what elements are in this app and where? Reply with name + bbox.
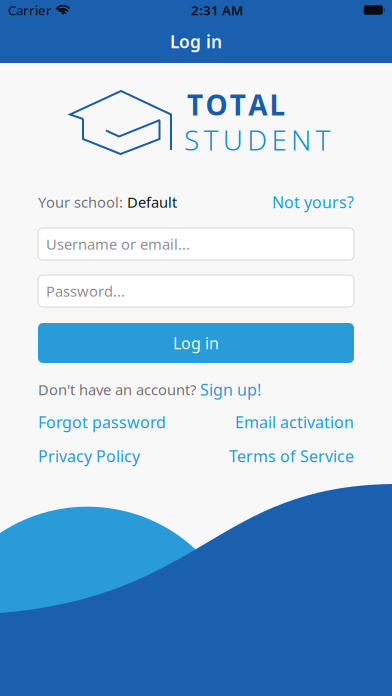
staticText: Log in bbox=[173, 332, 219, 354]
staticText: Privacy Policy bbox=[38, 445, 140, 467]
staticText: Default bbox=[127, 192, 177, 212]
staticText: Carrier bbox=[8, 1, 52, 19]
staticText: Log in bbox=[170, 30, 222, 53]
staticText: Don't have an account? bbox=[38, 380, 196, 399]
staticText: U bbox=[223, 121, 243, 158]
staticText: D bbox=[247, 121, 267, 158]
staticText: Your school: bbox=[38, 192, 127, 212]
staticText: L bbox=[270, 86, 286, 123]
staticText: Not yours? bbox=[272, 191, 354, 213]
staticText: Sign up! bbox=[200, 379, 261, 400]
staticText: T bbox=[230, 86, 246, 123]
button[interactable]: Terms of Service bbox=[229, 445, 354, 467]
button[interactable]: Not yours? bbox=[272, 191, 354, 213]
staticText: T bbox=[315, 121, 330, 158]
staticText: A bbox=[248, 86, 267, 123]
staticText: S bbox=[184, 121, 199, 158]
staticText: Password... bbox=[46, 281, 125, 301]
button[interactable]: Forgot password bbox=[38, 411, 166, 433]
button[interactable]: Privacy Policy bbox=[38, 445, 140, 467]
staticText: N bbox=[291, 121, 311, 158]
staticText: T bbox=[203, 121, 218, 158]
staticText: Forgot password bbox=[38, 411, 166, 433]
staticText: E bbox=[272, 121, 287, 158]
button[interactable]: Log in bbox=[38, 323, 354, 363]
staticText: O bbox=[205, 86, 227, 123]
staticText: Username or email... bbox=[46, 234, 190, 254]
staticText: T bbox=[187, 86, 203, 123]
staticText: 2:31 AM bbox=[191, 1, 243, 19]
button[interactable]: Sign up! bbox=[200, 379, 261, 400]
button[interactable]: Email activation bbox=[235, 411, 354, 433]
staticText: Terms of Service bbox=[229, 445, 354, 467]
staticText: Email activation bbox=[235, 411, 354, 433]
